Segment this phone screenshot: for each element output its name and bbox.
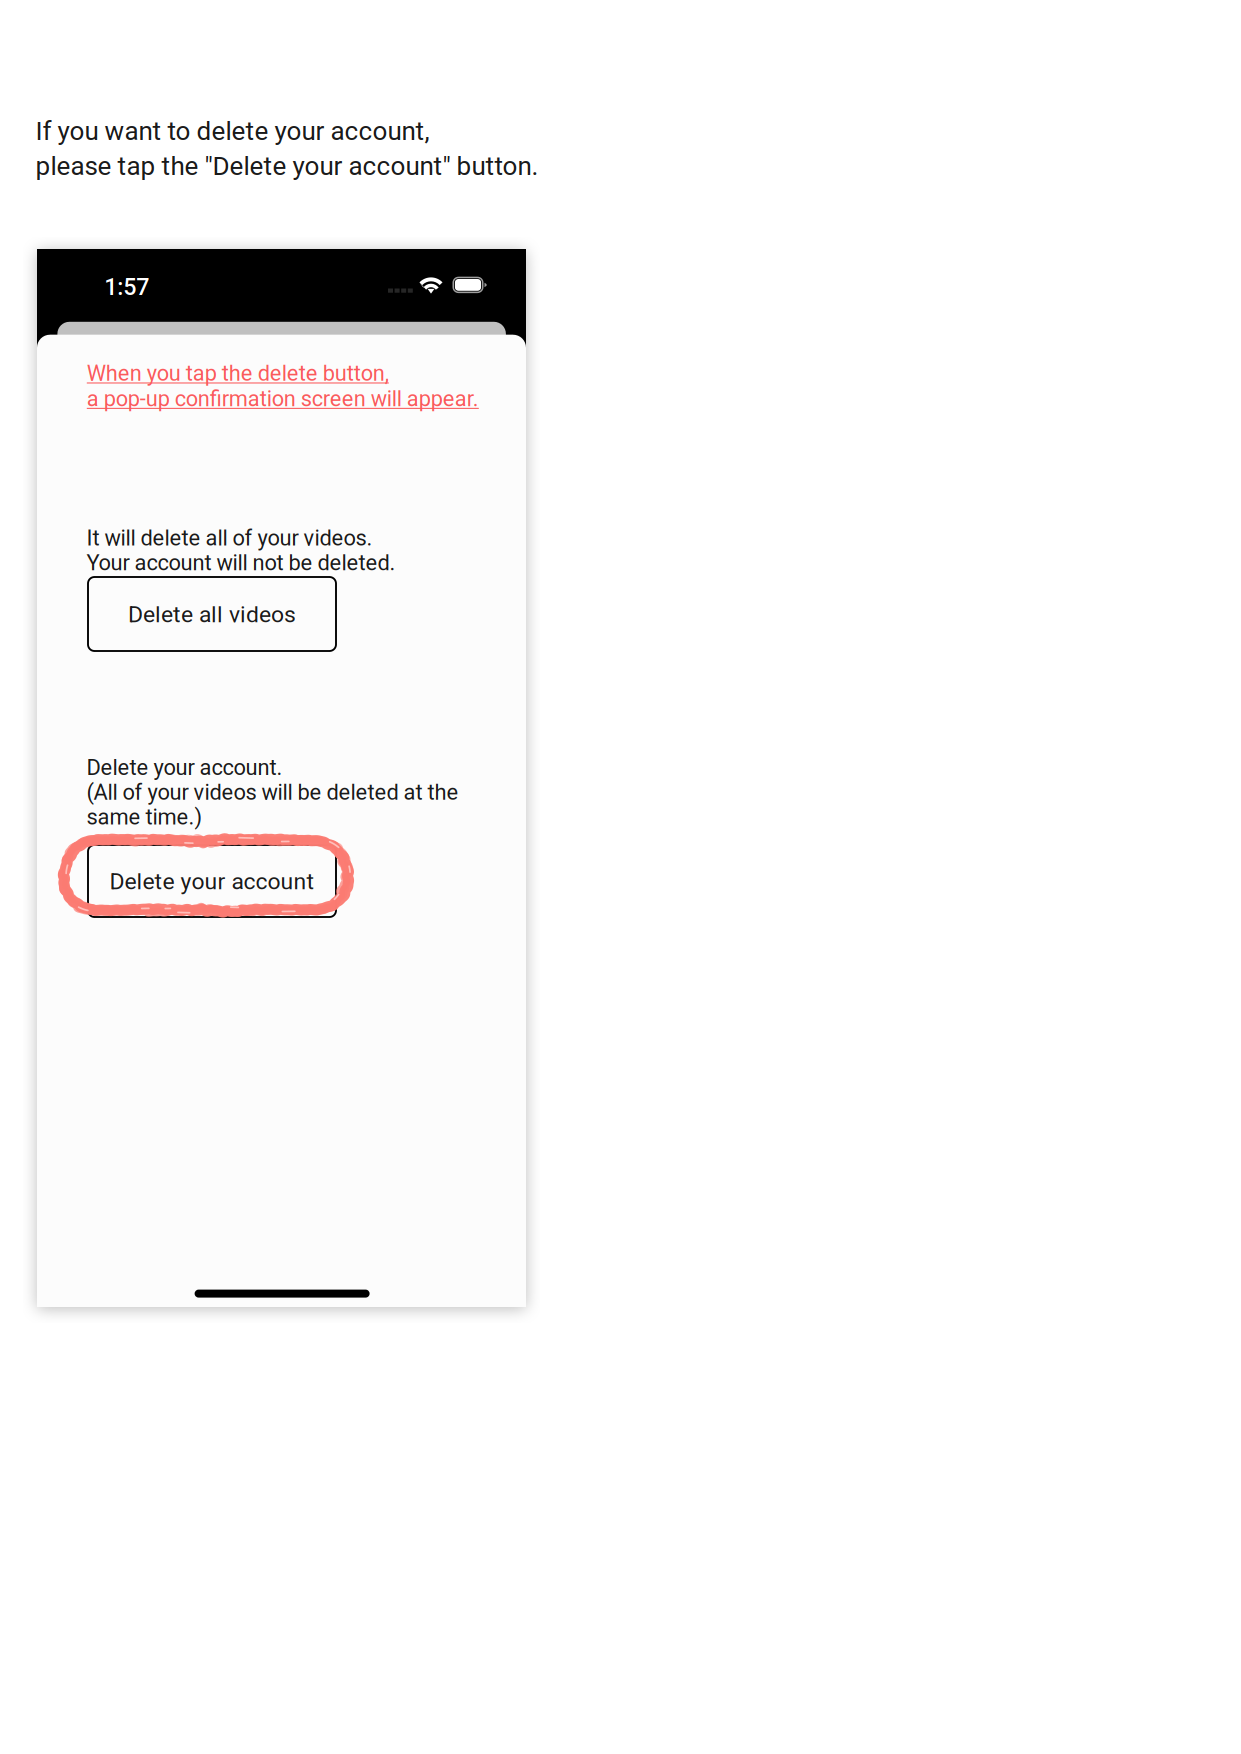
staticText: please tap the "Delete your account" but…	[35, 151, 538, 181]
button[interactable]: Delete all videos	[88, 577, 336, 651]
staticText: a pop-up confirmation screen will appear…	[87, 386, 479, 411]
staticText: Delete your account.	[86, 755, 282, 780]
staticText: Your account will not be deleted.	[86, 550, 395, 575]
staticText: Delete your account	[109, 868, 314, 895]
staticText: It will delete all of your videos.	[86, 525, 372, 551]
button[interactable]: Delete your account	[88, 845, 336, 917]
staticText: When you tap the delete button,	[87, 361, 389, 386]
staticText: Delete all videos	[128, 601, 296, 628]
staticText: (All of your videos will be deleted at t…	[86, 779, 458, 805]
staticText: 1:57	[104, 273, 149, 301]
staticText: same time.)	[86, 804, 202, 830]
staticText: If you want to delete your account,	[35, 116, 429, 146]
